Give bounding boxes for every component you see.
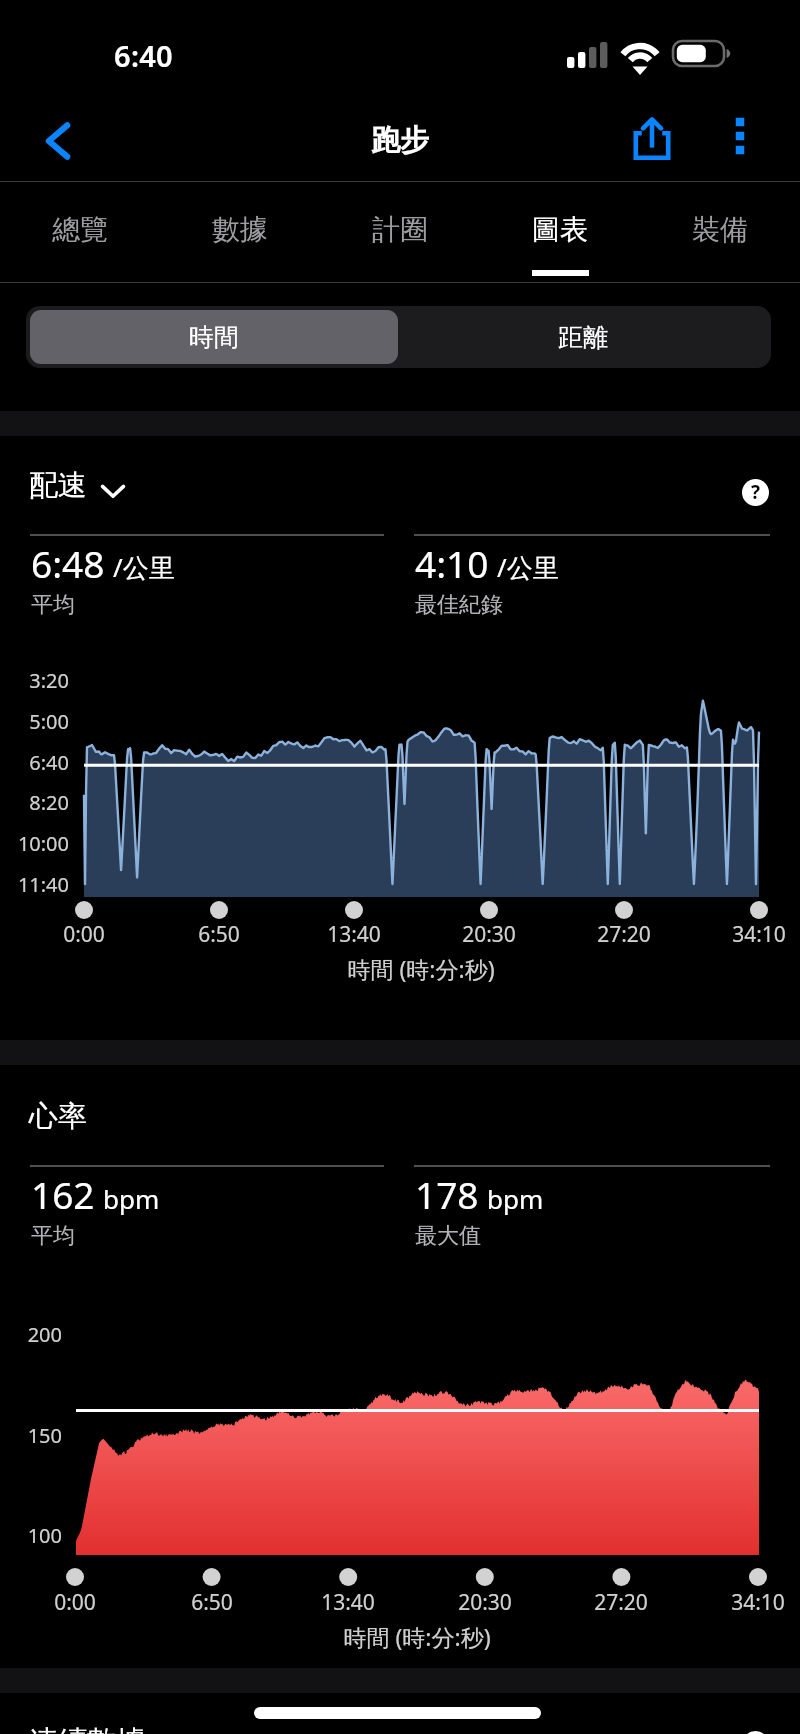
staticText: 數據: [212, 212, 268, 247]
staticText: 時間: [189, 322, 239, 353]
staticText: 心率: [29, 1098, 87, 1135]
button[interactable]: Help: [728, 1717, 782, 1734]
staticText: 11:40: [0, 871, 69, 898]
staticText: 34:10: [699, 920, 800, 949]
staticText: 連續數據: [29, 1723, 145, 1734]
button[interactable]: 時間: [30, 310, 398, 364]
staticText: 6:50: [152, 1588, 272, 1617]
staticText: 0:00: [24, 920, 144, 949]
staticText: ?: [751, 479, 761, 505]
staticText: 178: [415, 1169, 479, 1219]
staticText: 最大值: [415, 1222, 481, 1250]
button[interactable]: 數據: [160, 182, 320, 282]
staticText: 200: [0, 1321, 62, 1348]
staticText: 27:20: [564, 920, 684, 949]
staticText: 6:40: [114, 36, 173, 75]
staticText: 20:30: [425, 1588, 545, 1617]
staticText: 13:40: [288, 1588, 408, 1617]
staticText: 6:40: [0, 749, 69, 776]
staticText: 162: [31, 1169, 95, 1219]
staticText: 4:10: [415, 538, 489, 588]
staticText: 總覽: [52, 212, 108, 247]
staticText: bpm: [103, 1181, 160, 1216]
staticText: /公里: [113, 549, 175, 585]
staticText: 27:20: [561, 1588, 681, 1617]
staticText: 8:20: [0, 789, 69, 816]
button: 心率: [29, 1098, 87, 1135]
staticText: 20:30: [429, 920, 549, 949]
button[interactable]: 計圈: [320, 182, 480, 282]
staticText: 6:48: [31, 538, 105, 588]
staticText: 最佳紀錄: [415, 591, 503, 619]
staticText: /公里: [497, 549, 559, 585]
button[interactable]: 距離: [398, 310, 767, 364]
staticText: ?: [751, 1731, 761, 1734]
button[interactable]: Help: [728, 465, 782, 519]
staticText: 13:40: [294, 920, 414, 949]
staticText: 圖表: [532, 212, 588, 247]
staticText: 3:20: [0, 667, 69, 694]
staticText: 0:00: [15, 1588, 135, 1617]
button[interactable]: 圖表: [480, 182, 640, 282]
button[interactable]: 裝備: [640, 182, 800, 282]
staticText: bpm: [487, 1181, 544, 1216]
staticText: 34:10: [698, 1588, 800, 1617]
staticText: 100: [0, 1522, 62, 1549]
staticText: 平均: [31, 591, 75, 619]
staticText: 配速: [29, 467, 87, 504]
staticText: 150: [0, 1422, 62, 1449]
button[interactable]: More options: [712, 108, 768, 164]
staticText: 6:50: [159, 920, 279, 949]
staticText: 5:00: [0, 708, 69, 735]
staticText: 平均: [31, 1222, 75, 1250]
staticText: 10:00: [0, 830, 69, 857]
staticText: 計圈: [372, 212, 428, 247]
button[interactable]: Share: [622, 108, 682, 168]
staticText: 時間 (時:分:秒): [221, 953, 621, 984]
button[interactable]: 配速: [29, 467, 125, 504]
button[interactable]: 總覽: [0, 182, 160, 282]
button[interactable]: Back: [24, 114, 78, 168]
staticText: 裝備: [692, 212, 748, 247]
staticText: 距離: [558, 322, 608, 353]
staticText: 時間 (時:分:秒): [217, 1621, 617, 1652]
staticText: 跑步: [371, 122, 429, 159]
